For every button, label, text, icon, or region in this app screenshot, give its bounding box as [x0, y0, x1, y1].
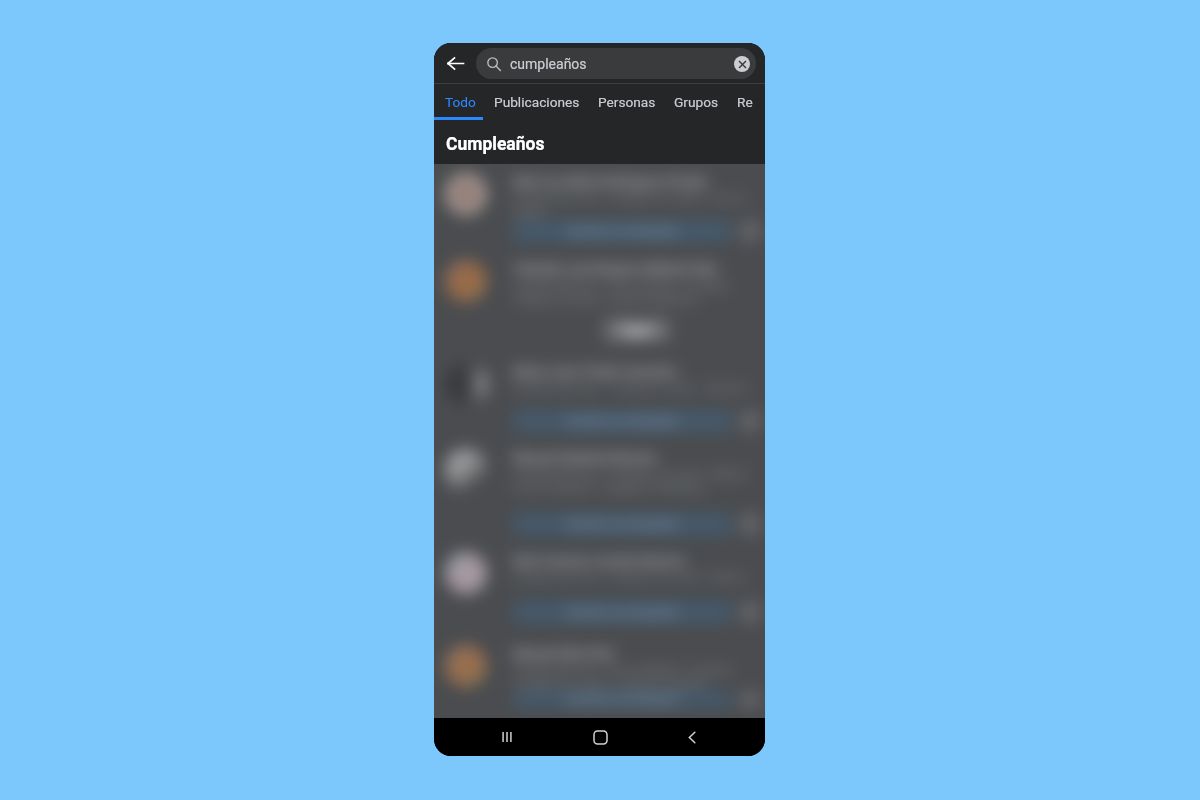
button[interactable]: Home [580, 718, 620, 756]
staticText: Cumple años hoy · 3 amigos en común · Vi… [513, 192, 761, 219]
staticText: Personas [598, 94, 656, 110]
staticText: Cumple años hoy · Vive en Madrid · 2 ami… [513, 664, 733, 691]
button[interactable]: Mari Carmen Lorente Navarro [434, 543, 765, 631]
button[interactable]: Seguir [604, 319, 670, 341]
staticText: Cumple años hoy · 5 amigos en común · Ma… [513, 468, 746, 495]
button[interactable]: Recent apps [487, 718, 527, 756]
button[interactable]: Todo [436, 84, 485, 120]
staticText: Seguir [621, 324, 654, 337]
staticText: Cumpleaños [446, 134, 545, 155]
button[interactable]: Manuel Gila Ortiz [434, 631, 765, 718]
button[interactable]: Manuel Gabarda Moreno [434, 441, 765, 543]
button[interactable]: Back [434, 46, 476, 80]
button[interactable]: Clear search [734, 56, 750, 72]
button[interactable]: Back [672, 718, 712, 756]
staticText: Yolanda Luna Burgos Gallardo Ruiz [513, 261, 718, 276]
staticText: cumpleaños [510, 56, 587, 72]
button[interactable]: cumpleaños [476, 48, 756, 79]
button[interactable]: Reels [728, 84, 765, 120]
button[interactable]: Escribir en la biografía [513, 601, 732, 623]
button[interactable]: Escribir en la biografía [513, 691, 732, 708]
button[interactable]: Escribir en la biografía [513, 410, 732, 432]
staticText: Reels [737, 94, 756, 110]
button[interactable]: Publicaciones [485, 84, 589, 120]
staticText: Publicaciones [494, 94, 580, 110]
staticText: Grupos [674, 94, 719, 110]
button[interactable]: Maria Jose Tirado Camacho [434, 355, 765, 441]
button[interactable]: Personas [589, 84, 665, 120]
button[interactable]: Escribir en la biografía [513, 513, 732, 535]
staticText: Todo [445, 94, 476, 110]
button[interactable]: Mari Luz Maria Rodriguez Pineda [434, 164, 765, 250]
button[interactable]: Yolanda Luna Burgos Gallardo Ruiz [434, 250, 765, 355]
button[interactable]: Grupos [665, 84, 728, 120]
button[interactable]: Escribir en la biografía [513, 220, 732, 242]
